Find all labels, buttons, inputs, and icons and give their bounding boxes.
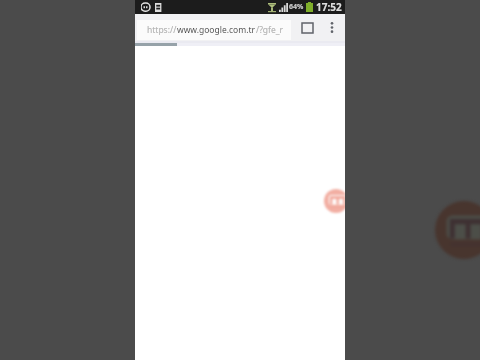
staticText: https://: [147, 24, 177, 36]
staticText: /?gfe_r: [256, 24, 284, 36]
button[interactable]: More options: [319, 14, 345, 41]
staticText: 17:52: [316, 0, 342, 14]
button[interactable]: https://: [137, 20, 291, 40]
button[interactable]: Tabs: [295, 14, 319, 41]
staticText: 64%: [289, 2, 304, 12]
staticText: www.google.com.tr: [177, 24, 256, 36]
